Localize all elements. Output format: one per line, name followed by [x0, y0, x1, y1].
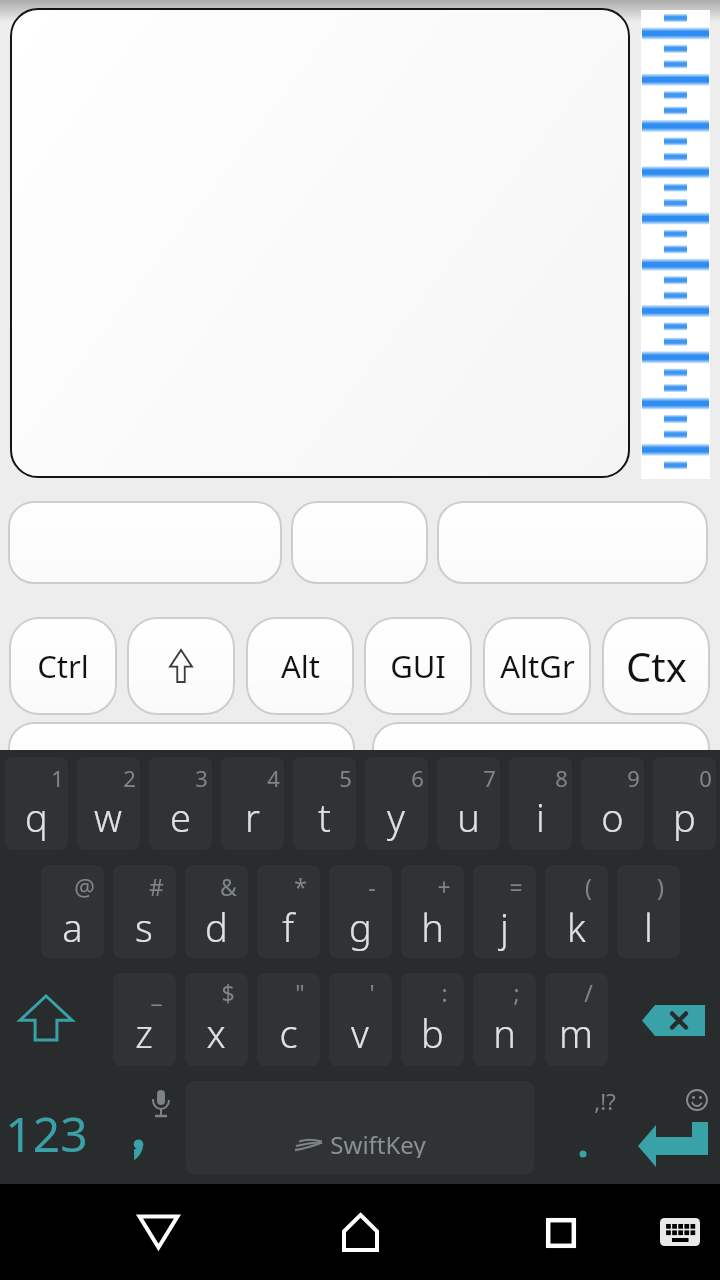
- staticText: @: [74, 871, 95, 902]
- button[interactable]: [329, 973, 392, 1066]
- button[interactable]: [20, 996, 72, 1040]
- button[interactable]: [113, 865, 176, 958]
- button[interactable]: [545, 865, 608, 958]
- staticText: b: [421, 1007, 444, 1059]
- staticText: GUI: [390, 645, 446, 687]
- staticText: c: [279, 1007, 298, 1059]
- staticText: w: [94, 791, 122, 843]
- button[interactable]: [329, 865, 392, 958]
- staticText: Ctrl: [37, 645, 89, 687]
- staticText: +: [437, 871, 451, 902]
- button[interactable]: [221, 757, 284, 850]
- button[interactable]: [149, 757, 212, 850]
- button[interactable]: [653, 757, 716, 850]
- staticText: 6: [411, 763, 424, 793]
- staticText: z: [135, 1007, 153, 1059]
- staticText: SwiftKey: [330, 1128, 426, 1158]
- button[interactable]: [77, 757, 140, 850]
- button[interactable]: [617, 865, 680, 958]
- button[interactable]: [185, 973, 248, 1066]
- staticText: y: [387, 791, 405, 843]
- button[interactable]: [545, 973, 608, 1066]
- staticText: g: [349, 901, 372, 953]
- staticText: x: [206, 1007, 226, 1059]
- staticText: j: [500, 901, 509, 953]
- staticText: ": [295, 977, 305, 1008]
- button[interactable]: [581, 757, 644, 850]
- staticText: q: [25, 791, 48, 843]
- staticText: s: [135, 901, 153, 953]
- button[interactable]: [365, 757, 428, 850]
- staticText: v: [351, 1007, 369, 1059]
- staticText: -: [368, 871, 376, 902]
- staticText: e: [170, 791, 191, 843]
- button[interactable]: [642, 1005, 705, 1036]
- staticText: t: [318, 791, 331, 843]
- button[interactable]: [150, 1090, 172, 1121]
- staticText: *: [294, 871, 307, 902]
- button[interactable]: [372, 722, 710, 782]
- staticText: p: [673, 791, 696, 843]
- button[interactable]: [638, 1122, 708, 1168]
- staticText: m: [559, 1007, 593, 1059]
- button[interactable]: Ctrl: [9, 617, 117, 715]
- button[interactable]: GUI: [364, 617, 472, 715]
- staticText: Ctx: [626, 639, 687, 693]
- staticText: h: [421, 901, 444, 953]
- button[interactable]: [342, 1213, 379, 1252]
- staticText: /: [584, 977, 593, 1008]
- staticText: 123: [5, 1101, 88, 1161]
- button[interactable]: [293, 757, 356, 850]
- button[interactable]: [401, 865, 464, 958]
- staticText: 8: [555, 763, 568, 793]
- staticText: f: [282, 901, 294, 953]
- staticText: 2: [123, 763, 136, 793]
- button[interactable]: [257, 865, 320, 958]
- button[interactable]: [546, 1218, 576, 1248]
- staticText: 1: [51, 763, 64, 793]
- button[interactable]: [137, 1214, 180, 1250]
- button[interactable]: AltGr: [483, 617, 591, 715]
- button[interactable]: Alt: [246, 617, 354, 715]
- button[interactable]: [401, 973, 464, 1066]
- staticText: ;: [513, 977, 520, 1008]
- button[interactable]: [291, 501, 428, 584]
- button[interactable]: [641, 10, 710, 479]
- button[interactable]: [128, 1139, 148, 1163]
- button[interactable]: [437, 501, 708, 584]
- button[interactable]: [509, 757, 572, 850]
- staticText: 7: [483, 763, 496, 793]
- button[interactable]: [127, 617, 235, 715]
- button[interactable]: [660, 1218, 700, 1246]
- staticText: r: [245, 791, 260, 843]
- staticText: 5: [339, 763, 352, 793]
- button[interactable]: [186, 1081, 534, 1174]
- staticText: k: [567, 901, 586, 953]
- staticText: ,!?: [594, 1086, 616, 1116]
- staticText: u: [457, 791, 480, 843]
- button[interactable]: [10, 8, 630, 478]
- staticText: n: [493, 1007, 516, 1059]
- button[interactable]: [437, 757, 500, 850]
- staticText: a: [62, 901, 83, 953]
- button[interactable]: [8, 722, 355, 782]
- staticText: 0: [699, 763, 712, 793]
- staticText: 4: [267, 763, 280, 793]
- button[interactable]: [41, 865, 104, 958]
- button[interactable]: [257, 973, 320, 1066]
- button[interactable]: [473, 865, 536, 958]
- staticText: Alt: [281, 645, 320, 687]
- button[interactable]: [5, 757, 68, 850]
- button[interactable]: [185, 865, 248, 958]
- button[interactable]: [473, 973, 536, 1066]
- button[interactable]: Ctx: [602, 617, 710, 715]
- staticText: _: [151, 977, 162, 1008]
- staticText: $: [221, 977, 235, 1008]
- button[interactable]: [113, 973, 176, 1066]
- staticText: 3: [195, 763, 208, 793]
- button[interactable]: [686, 1089, 708, 1111]
- staticText: :: [441, 977, 448, 1008]
- button[interactable]: [8, 501, 282, 584]
- staticText: ': [369, 977, 375, 1008]
- staticText: (: [585, 871, 592, 902]
